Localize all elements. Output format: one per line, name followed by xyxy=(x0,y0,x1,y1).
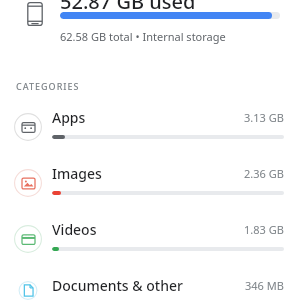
staticText: 346 MB xyxy=(245,278,284,293)
staticText: 1.83 GB xyxy=(244,222,284,237)
staticText: CATEGORIES xyxy=(16,80,80,92)
button[interactable]: Documents & other xyxy=(0,276,300,300)
staticText: 52.87 GB used xyxy=(60,0,196,15)
button[interactable]: Apps xyxy=(0,108,300,164)
staticText: Apps xyxy=(52,108,244,127)
staticText: 62.58 GB total • Internal storage xyxy=(60,29,226,44)
button[interactable]: Images xyxy=(0,164,300,220)
staticText: 3.13 GB xyxy=(244,110,284,125)
staticText: Videos xyxy=(52,220,244,239)
staticText: 2.36 GB xyxy=(244,166,284,181)
staticText: Images xyxy=(52,164,244,183)
other: Internal storage device xyxy=(26,1,44,27)
staticText: Documents & other xyxy=(52,276,245,295)
button[interactable]: Videos xyxy=(0,220,300,276)
